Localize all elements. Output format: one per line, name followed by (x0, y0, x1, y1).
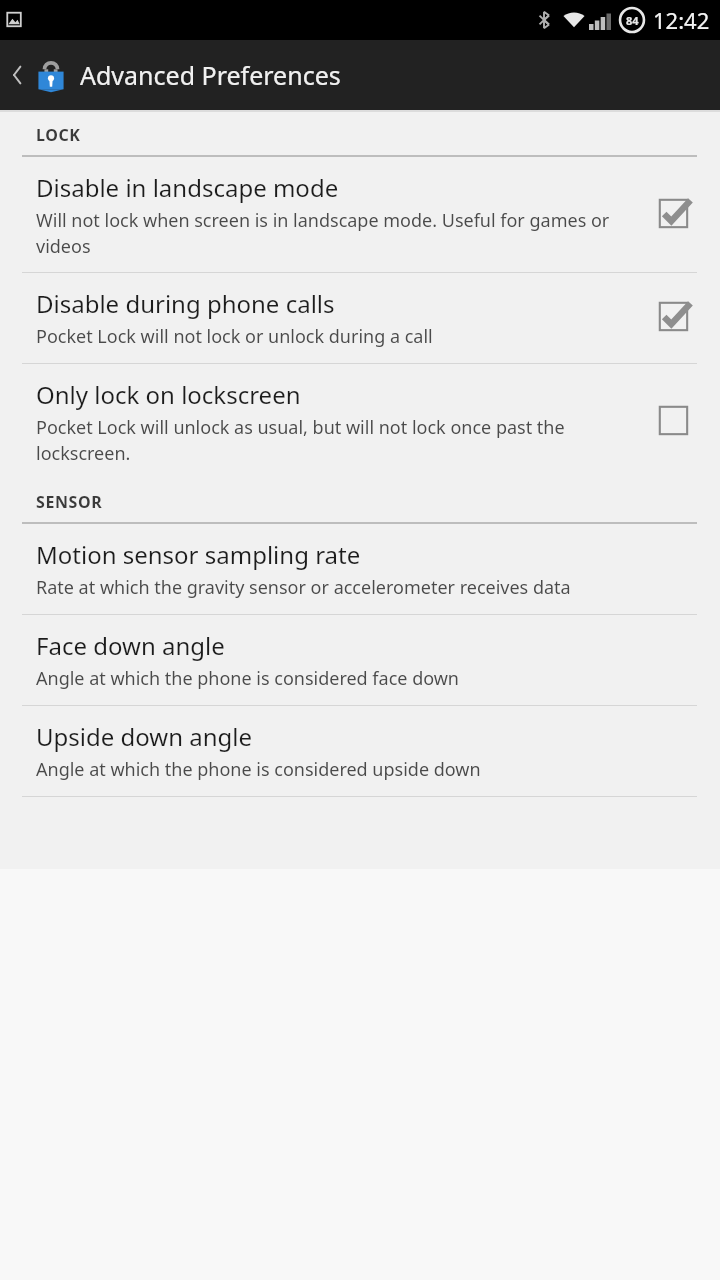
staticText: Rate at which the gravity sensor or acce… (36, 575, 571, 600)
button[interactable]: Motion sensor sampling rate (0, 524, 720, 614)
staticText: 12:42 (653, 5, 710, 35)
button[interactable]: Unchecked (652, 399, 698, 445)
staticText: Advanced Preferences (80, 58, 341, 92)
button[interactable]: Upside down angle (0, 706, 720, 796)
button[interactable]: Face down angle (0, 615, 720, 705)
staticText: Will not lock when screen is in landscap… (36, 208, 638, 258)
button[interactable]: Checked (652, 295, 698, 341)
button[interactable]: Disable in landscape mode (0, 157, 720, 272)
staticText: SENSOR (36, 491, 103, 513)
staticText: Only lock on lockscreen (36, 378, 301, 411)
button[interactable]: Disable during phone calls (0, 273, 720, 363)
staticText: Angle at which the phone is considered f… (36, 666, 459, 691)
staticText: Pocket Lock will unlock as usual, but wi… (36, 415, 638, 465)
staticText: Disable in landscape mode (36, 171, 339, 204)
staticText: Disable during phone calls (36, 287, 335, 320)
button[interactable]: Checked (652, 192, 698, 238)
staticText: Angle at which the phone is considered u… (36, 757, 481, 782)
button[interactable]: Only lock on lockscreen (0, 364, 720, 479)
staticText: 84 (626, 13, 639, 28)
staticText: LOCK (36, 124, 81, 146)
button[interactable]: Back (0, 40, 720, 110)
staticText: Upside down angle (36, 720, 253, 753)
staticText: Face down angle (36, 629, 225, 662)
staticText: Motion sensor sampling rate (36, 538, 361, 571)
staticText: Pocket Lock will not lock or unlock duri… (36, 324, 433, 349)
